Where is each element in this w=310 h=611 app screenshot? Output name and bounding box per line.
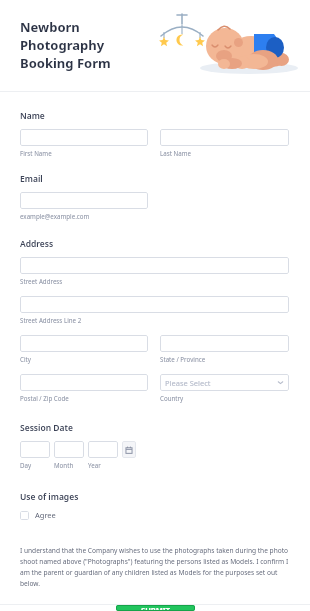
staticText: I understand that the Company wishes to … bbox=[20, 546, 289, 588]
staticText: Day bbox=[20, 461, 32, 469]
button[interactable]: Pick date bbox=[122, 441, 136, 458]
button[interactable]: Please Select bbox=[160, 374, 289, 391]
staticText: First Name bbox=[20, 149, 52, 157]
staticText: Email bbox=[20, 173, 43, 185]
button[interactable] bbox=[54, 441, 84, 458]
button[interactable]: SUBMIT bbox=[116, 605, 195, 611]
staticText: City bbox=[20, 355, 31, 363]
button[interactable] bbox=[20, 257, 289, 274]
staticText: example@example.com bbox=[20, 212, 90, 220]
button[interactable] bbox=[20, 192, 148, 209]
staticText: Address bbox=[20, 238, 54, 250]
button[interactable] bbox=[20, 335, 148, 352]
button[interactable] bbox=[20, 296, 289, 313]
staticText: SUBMIT bbox=[141, 605, 171, 611]
button[interactable] bbox=[160, 129, 289, 146]
staticText: Street Address Line 2 bbox=[20, 316, 82, 324]
staticText: Street Address bbox=[20, 277, 63, 285]
button[interactable] bbox=[20, 374, 148, 391]
staticText: Last Name bbox=[160, 149, 191, 157]
staticText: State / Province bbox=[160, 355, 206, 363]
button[interactable] bbox=[20, 129, 148, 146]
staticText: Agree bbox=[35, 510, 56, 520]
button[interactable]: Agree bbox=[20, 510, 62, 520]
button[interactable] bbox=[88, 441, 118, 458]
staticText: Postal / Zip Code bbox=[20, 394, 69, 402]
staticText: Newborn bbox=[20, 18, 80, 36]
button[interactable] bbox=[20, 441, 50, 458]
staticText: Use of images bbox=[20, 491, 79, 503]
staticText: Country bbox=[160, 394, 184, 402]
staticText: Session Date bbox=[20, 422, 73, 434]
staticText: Please Select bbox=[165, 378, 211, 388]
staticText: Booking Form bbox=[20, 54, 111, 72]
staticText: Name bbox=[20, 110, 45, 122]
staticText: Year bbox=[88, 461, 101, 469]
staticText: Photography bbox=[20, 36, 105, 54]
button[interactable] bbox=[160, 335, 289, 352]
staticText: Month bbox=[54, 461, 74, 469]
